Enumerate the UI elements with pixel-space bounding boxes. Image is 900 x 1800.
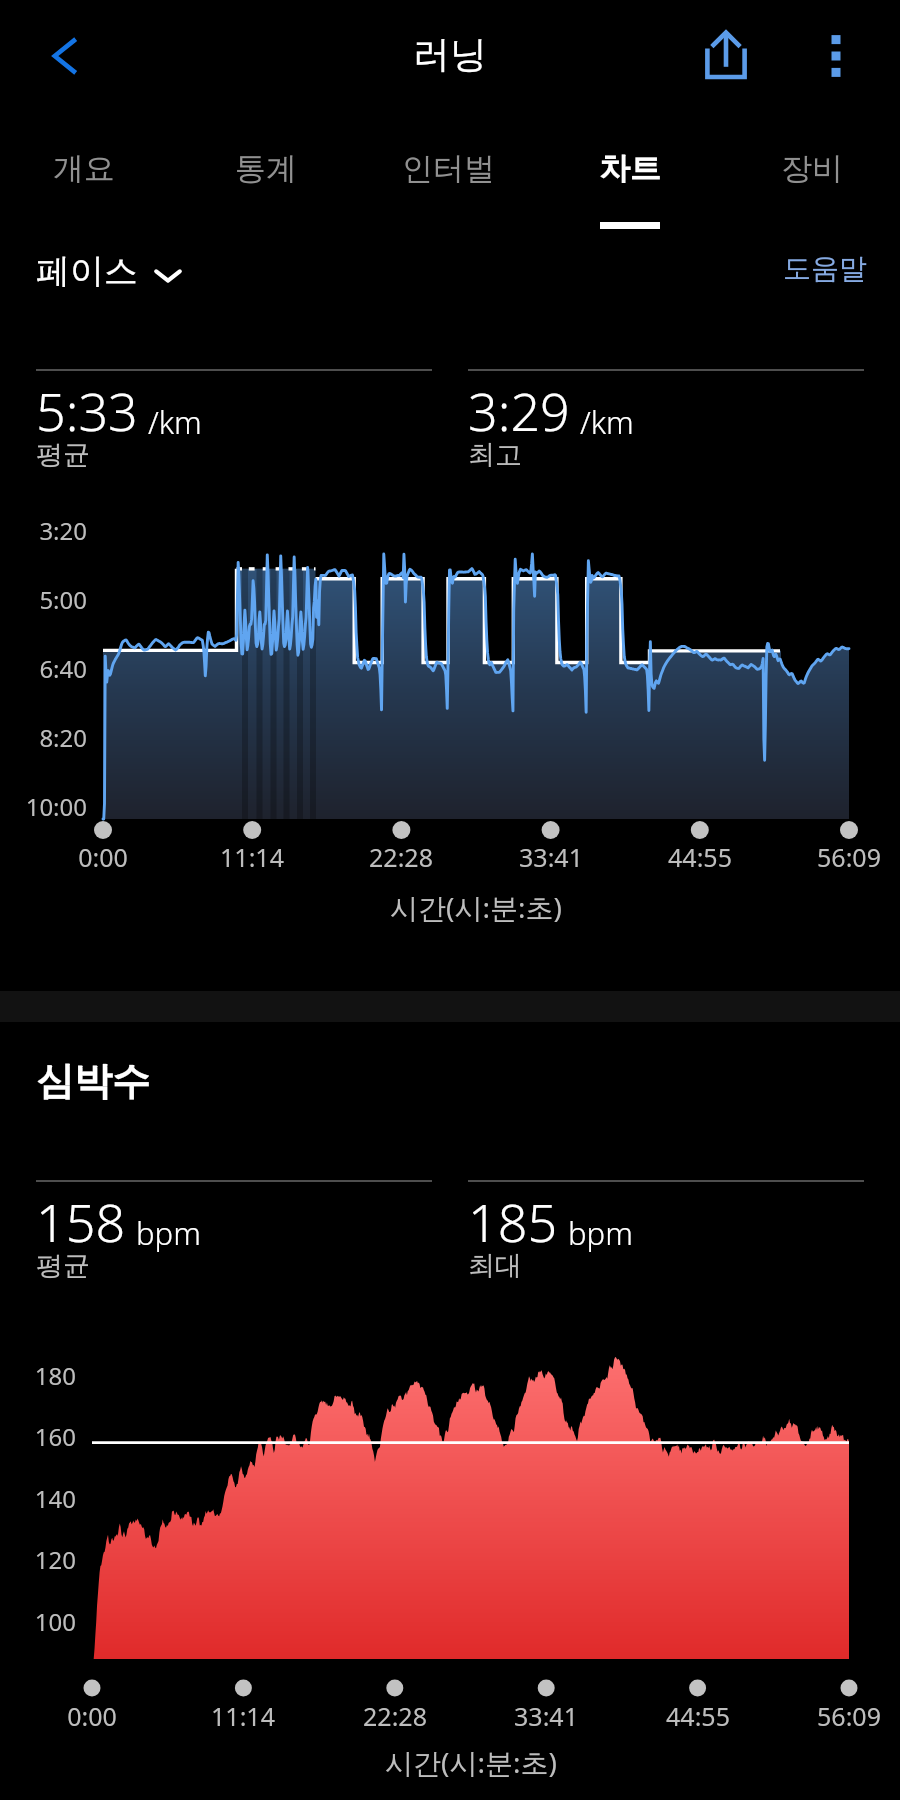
staticText: 180 xyxy=(0,1359,76,1392)
staticText: 160 xyxy=(0,1420,76,1453)
staticText: 5:00 xyxy=(0,583,87,616)
button[interactable]: 장비 xyxy=(721,112,900,232)
staticText: 10:00 xyxy=(0,790,87,823)
button[interactable]: Back xyxy=(25,17,103,95)
staticText: 3:29 xyxy=(468,375,570,446)
staticText: 6:40 xyxy=(0,652,87,685)
staticText: 120 xyxy=(0,1543,76,1576)
button[interactable]: More options xyxy=(794,14,878,98)
staticText: 8:20 xyxy=(0,721,87,754)
button[interactable]: 통계 xyxy=(175,112,357,232)
staticText: 3:20 xyxy=(0,514,87,547)
staticText: 최고 xyxy=(468,438,522,472)
staticText: 개요 xyxy=(53,149,115,188)
staticText: 56:09 xyxy=(769,840,900,874)
button[interactable]: Share xyxy=(684,14,768,98)
staticText: 도움말 xyxy=(783,251,867,286)
staticText: 평균 xyxy=(36,1249,90,1283)
staticText: bpm xyxy=(136,1212,201,1254)
staticText: 0:00 xyxy=(23,840,183,874)
staticText: 185 xyxy=(468,1186,558,1257)
button[interactable]: 페이스 xyxy=(36,250,182,293)
staticText: 158 xyxy=(36,1186,126,1257)
staticText: 140 xyxy=(0,1482,76,1515)
staticText: 최대 xyxy=(468,1249,522,1283)
staticText: 시간(시:분:초) xyxy=(385,1743,557,1781)
button[interactable]: 차트 xyxy=(539,112,721,232)
staticText: 11:14 xyxy=(163,1699,323,1733)
button[interactable]: 개요 xyxy=(0,112,175,232)
staticText: 차트 xyxy=(599,149,661,188)
staticText: bpm xyxy=(568,1212,633,1254)
staticText: 33:41 xyxy=(466,1699,626,1733)
staticText: 러닝 xyxy=(413,31,487,78)
button[interactable]: 인터벌 xyxy=(357,112,539,232)
staticText: 44:55 xyxy=(620,840,780,874)
staticText: 33:41 xyxy=(471,840,631,874)
staticText: 페이스 xyxy=(36,250,138,293)
staticText: 0:00 xyxy=(12,1699,172,1733)
staticText: 56:09 xyxy=(769,1699,900,1733)
staticText: 11:14 xyxy=(172,840,332,874)
button[interactable]: 도움말 xyxy=(783,251,867,286)
staticText: 심박수 xyxy=(36,1057,150,1105)
staticText: 평균 xyxy=(36,438,90,472)
staticText: 장비 xyxy=(781,149,843,188)
staticText: 44:55 xyxy=(618,1699,778,1733)
staticText: 22:28 xyxy=(321,840,481,874)
staticText: 5:33 xyxy=(36,375,138,446)
staticText: /km xyxy=(580,401,634,443)
staticText: 100 xyxy=(0,1605,76,1638)
staticText: 통계 xyxy=(235,149,297,188)
staticText: 인터벌 xyxy=(402,149,495,188)
staticText: /km xyxy=(148,401,202,443)
staticText: 시간(시:분:초) xyxy=(390,888,562,926)
staticText: 22:28 xyxy=(315,1699,475,1733)
